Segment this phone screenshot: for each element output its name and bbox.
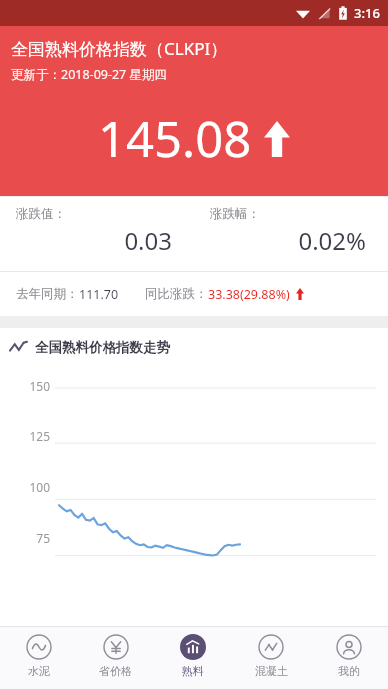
staticText: 100 xyxy=(20,479,50,495)
staticText: 0.03 xyxy=(16,224,172,257)
staticText: 3:16 xyxy=(354,4,380,22)
staticText: 全国熟料价格指数（CLKPI） xyxy=(11,37,228,60)
staticText: 0.02% xyxy=(210,224,366,257)
button[interactable]: 熟料 xyxy=(154,627,232,689)
staticText: 111.70 xyxy=(79,286,119,303)
staticText: 更新于：2018-09-27 星期四 xyxy=(11,66,168,83)
staticText: 145.08 xyxy=(98,105,252,172)
staticText: 同比涨跌： xyxy=(145,286,208,302)
staticText: 75 xyxy=(20,530,50,546)
staticText: 涨跌值： xyxy=(16,206,66,222)
button[interactable]: 混凝土 xyxy=(232,627,310,689)
staticText: 我的 xyxy=(338,664,360,678)
staticText: 全国熟料价格指数走势 xyxy=(35,339,170,356)
staticText: 33.38(29.88%) xyxy=(208,286,290,303)
staticText: 涨跌幅： xyxy=(210,206,260,222)
staticText: 水泥 xyxy=(28,664,50,678)
button[interactable]: 我的 xyxy=(310,627,388,689)
button[interactable]: 水泥 xyxy=(0,627,77,689)
staticText: 去年同期： xyxy=(16,286,79,302)
button[interactable]: 省价格 xyxy=(77,627,154,689)
staticText: 省价格 xyxy=(99,664,132,678)
staticText: 150 xyxy=(20,378,50,394)
staticText: 熟料 xyxy=(182,664,204,678)
staticText: 混凝土 xyxy=(255,664,288,678)
staticText: 125 xyxy=(20,428,50,444)
